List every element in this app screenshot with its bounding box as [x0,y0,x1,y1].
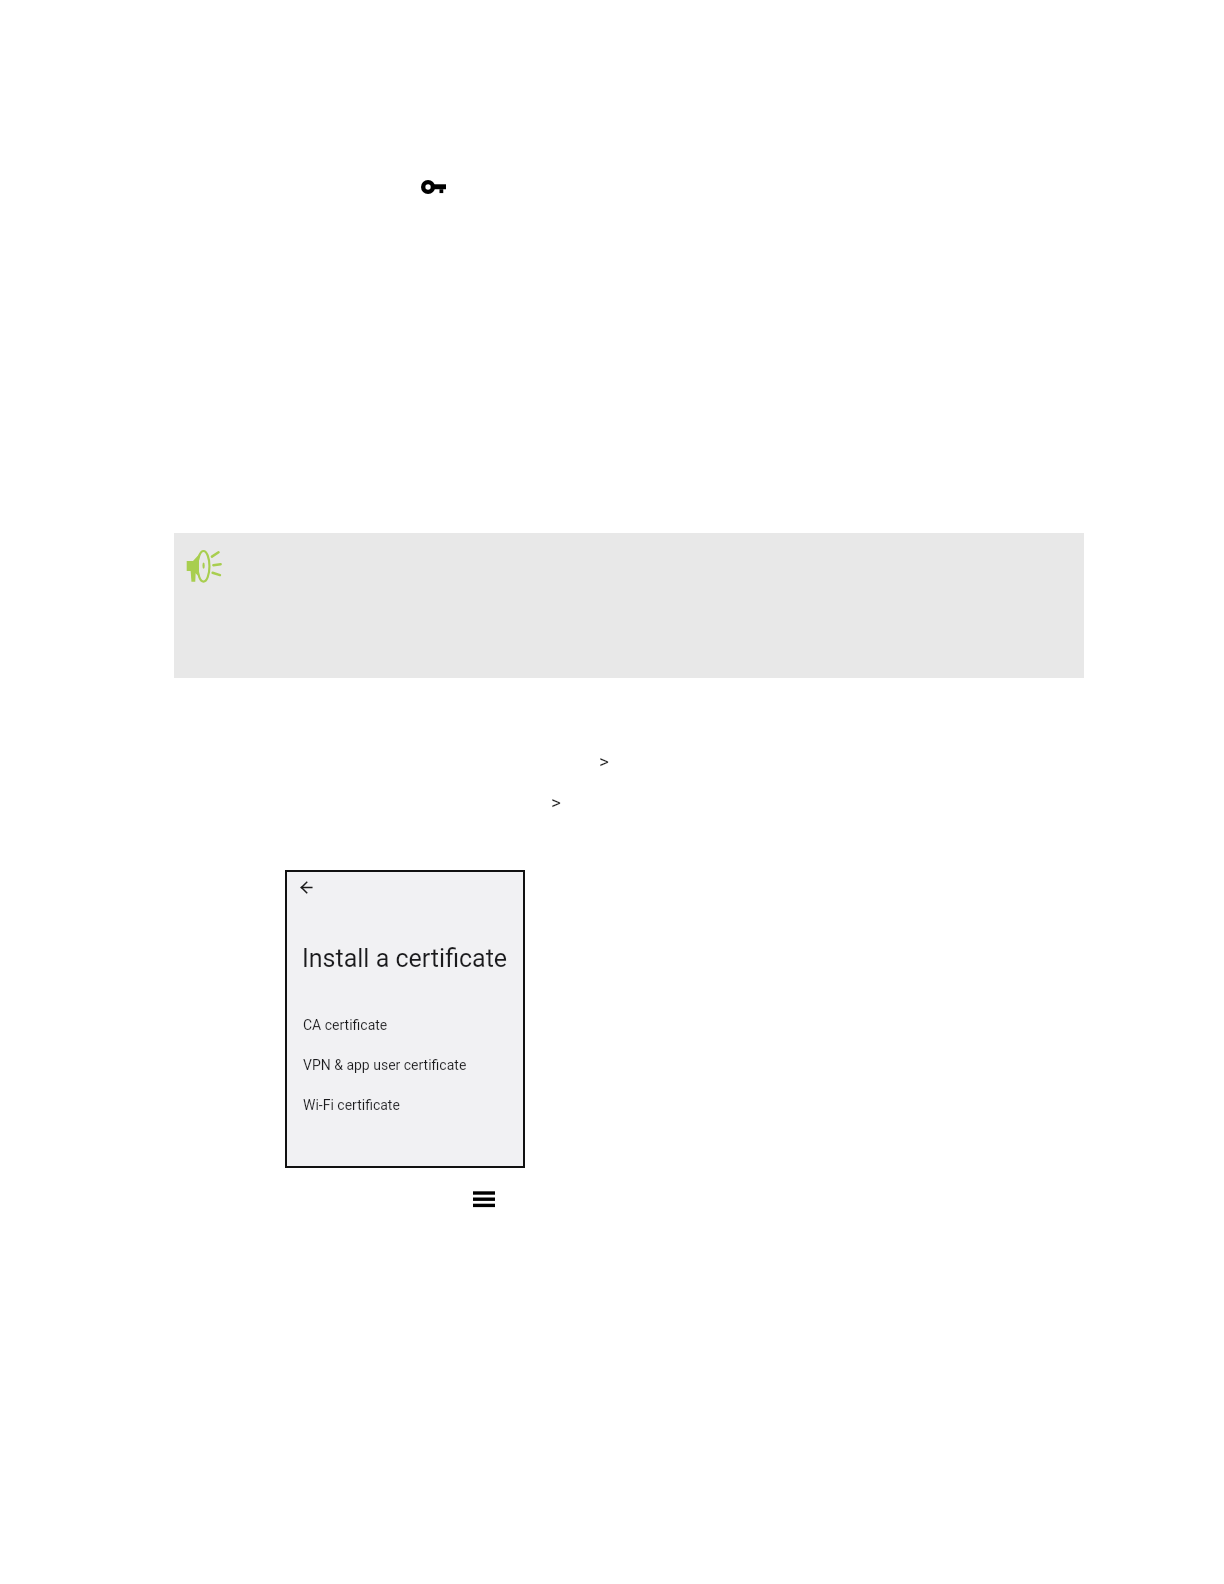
staticText: CA certificate [303,1017,388,1033]
button[interactable]: Wi-Fi certificate [285,1092,521,1118]
button[interactable]: CA certificate [285,1012,521,1038]
button[interactable]: Menu [473,1191,495,1210]
button[interactable]: Back [301,882,312,893]
staticText: VPN & app user certificate [303,1057,467,1073]
staticText: Wi-Fi certificate [303,1097,400,1113]
staticText: > [599,750,609,772]
button[interactable]: VPN & app user certificate [285,1052,521,1078]
other: Security key [421,179,446,195]
staticText: Install a certificate [302,944,508,973]
staticText: > [551,791,561,813]
